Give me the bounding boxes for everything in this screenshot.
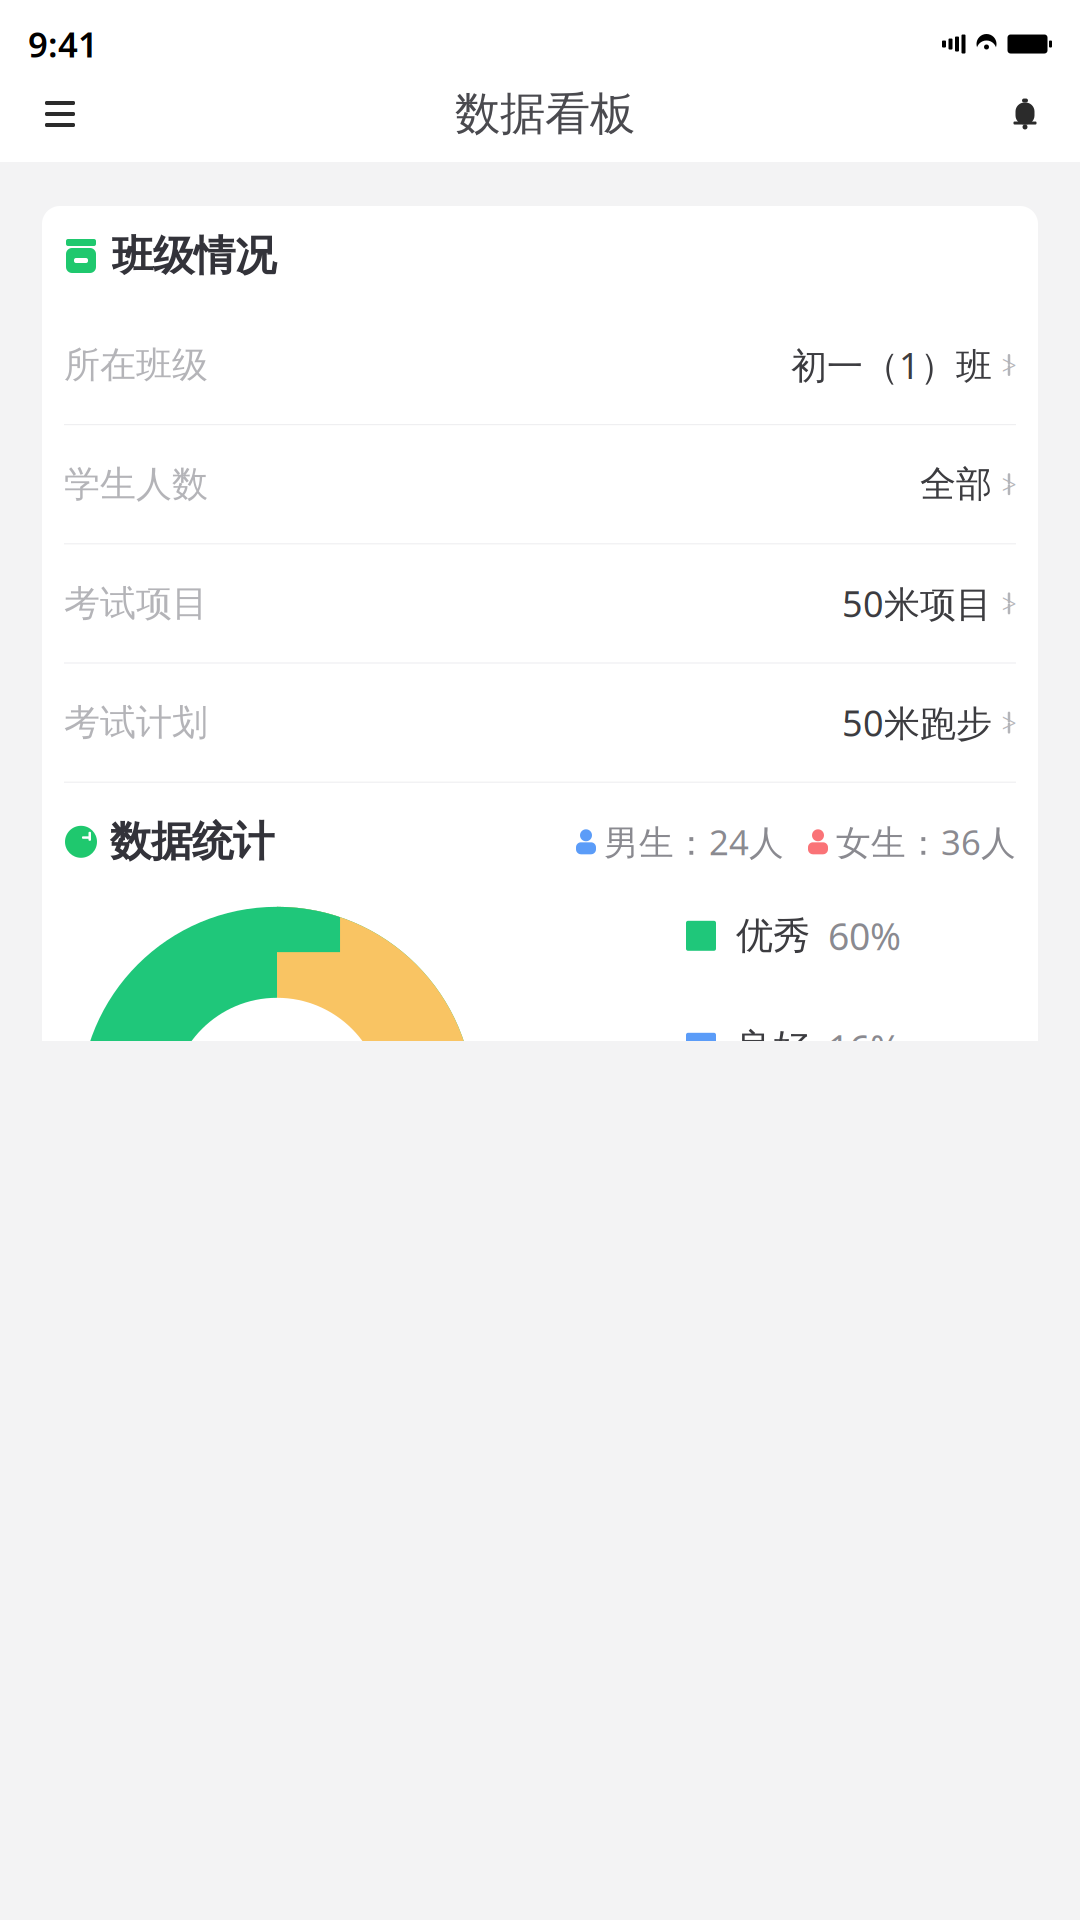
staticText: 数据看板 <box>455 86 635 142</box>
staticText: 初一（1）班 <box>791 341 992 389</box>
staticText: 良好 <box>736 1025 810 1071</box>
staticText: 50米项目 <box>842 579 992 627</box>
staticText: 9:41 <box>28 21 98 67</box>
staticText: 女生：36人 <box>836 819 1016 865</box>
staticText: 数据统计 <box>110 816 274 867</box>
staticText: > <box>1001 705 1016 740</box>
staticText: 所在班级 <box>64 343 208 387</box>
button[interactable]: 考试计划 <box>42 664 1038 782</box>
staticText: > <box>1001 466 1016 502</box>
button[interactable]: 考试项目 <box>42 544 1038 662</box>
staticText: 男生：24人 <box>604 819 784 865</box>
staticText: 60% <box>828 911 901 961</box>
staticText: 学生人数 <box>64 462 208 506</box>
staticText: 班级情况 <box>112 231 276 281</box>
staticText: 全部 <box>920 462 992 506</box>
button[interactable]: 所在班级 <box>42 306 1038 424</box>
staticText: > <box>1001 586 1016 621</box>
button[interactable]: 学生人数 <box>42 425 1038 543</box>
staticText: 优秀 <box>736 913 810 959</box>
staticText: 16% <box>828 1023 901 1073</box>
staticText: 考试项目 <box>64 581 208 625</box>
button[interactable]: Notifications <box>996 69 1054 159</box>
button[interactable]: Menu <box>26 69 94 159</box>
staticText: 50米跑步 <box>842 699 992 746</box>
staticText: > <box>1001 347 1016 383</box>
staticText: 考试计划 <box>64 700 208 745</box>
